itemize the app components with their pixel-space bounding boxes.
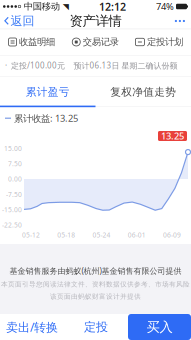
button[interactable]: 收益明细: [0, 29, 64, 55]
staticText: 买入: [146, 319, 172, 335]
staticText: 本页面引导您阅读法律文件、资料数据仅供参考、市场有风险: [1, 280, 190, 288]
staticText: 05-18: [57, 231, 75, 239]
staticText: 15.00: [4, 144, 22, 153]
staticText: · 定投/100.00元: [5, 60, 65, 71]
staticText: 累计盈亏: [26, 85, 70, 98]
button[interactable]: 定投计划: [127, 29, 191, 55]
button[interactable]: 买入: [128, 314, 191, 340]
staticText: 13.25: [161, 130, 184, 142]
staticText: 复权净值走势: [110, 85, 176, 98]
staticText: 05-24: [92, 231, 110, 239]
staticText: 0.00: [8, 175, 22, 183]
staticText: 卖出/转换: [6, 319, 58, 335]
staticText: 05-12: [22, 231, 40, 239]
staticText: 该页面由蚂蚁财富设计并提供: [50, 292, 141, 300]
staticText: 累计收益: 13.25: [14, 112, 78, 124]
staticText: 返回: [10, 14, 34, 28]
button[interactable]: 交易记录: [64, 29, 127, 55]
staticText: -22.50: [2, 220, 22, 229]
staticText: 06-09: [163, 231, 181, 239]
staticText: 12:12: [99, 0, 126, 14]
button[interactable]: 定投: [64, 314, 128, 340]
staticText: 定投计划: [147, 36, 183, 48]
button[interactable]: 累计盈亏: [0, 76, 95, 108]
staticText: 7.50: [8, 159, 22, 168]
staticText: 06-01: [128, 231, 146, 239]
button[interactable]: More options: [169, 13, 191, 29]
staticText: 资产详情: [69, 13, 121, 29]
staticText: 基金销售服务由蚂蚁(杭州)基金销售有限公司提供: [9, 265, 181, 276]
staticText: -7.50: [6, 190, 22, 199]
staticText: ◥: [60, 2, 69, 11]
button[interactable]: 返回: [0, 13, 38, 29]
button[interactable]: 卖出/转换: [0, 314, 64, 340]
staticText: 预计06.13日 星期二确认份额: [73, 60, 177, 71]
staticText: 定投: [84, 320, 108, 334]
staticText: -15.00: [2, 205, 22, 214]
staticText: 收益明细: [19, 36, 55, 48]
staticText: 中国移动: [21, 1, 60, 12]
button[interactable]: 复权净值走势: [95, 76, 191, 108]
staticText: 74%: [156, 0, 174, 13]
staticText: 交易记录: [83, 36, 119, 48]
